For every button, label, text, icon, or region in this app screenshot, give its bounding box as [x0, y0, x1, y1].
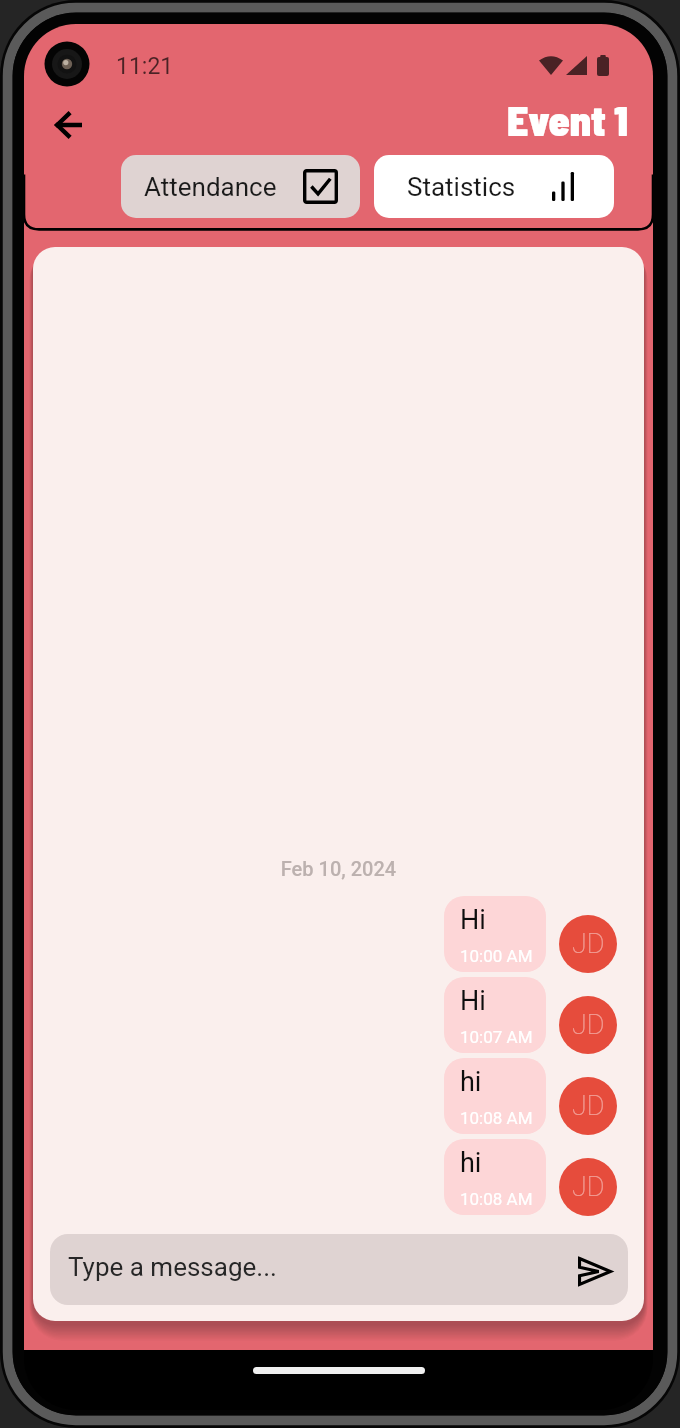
button[interactable]: JD	[559, 1077, 617, 1135]
staticText: Hi	[460, 904, 486, 936]
staticText: 10:00 AM	[460, 946, 533, 966]
button[interactable]: JD	[559, 1158, 617, 1216]
staticText: 10:08 AM	[460, 1108, 533, 1128]
staticText: Event 1	[507, 94, 628, 144]
staticText: JD	[572, 1009, 605, 1041]
button[interactable]: Back	[38, 96, 99, 153]
button[interactable]: Hi	[444, 977, 546, 1053]
button[interactable]: hi	[444, 1058, 546, 1134]
staticText: Feb 10, 2024	[33, 857, 644, 880]
staticText: hi	[460, 1147, 482, 1179]
staticText: Hi	[460, 985, 486, 1017]
button[interactable]: Send	[572, 1248, 618, 1294]
button[interactable]: Attendance	[121, 155, 360, 218]
staticText: hi	[460, 1066, 482, 1098]
staticText: 10:07 AM	[460, 1027, 533, 1047]
button[interactable]: JD	[559, 915, 617, 973]
staticText: Statistics	[407, 172, 516, 202]
button[interactable]: Statistics	[374, 155, 614, 218]
staticText: Type a message...	[68, 1252, 277, 1282]
staticText: 11:21	[116, 53, 174, 80]
button[interactable]: hi	[444, 1139, 546, 1215]
staticText: Attendance	[144, 172, 277, 202]
button[interactable]: Type a message...	[50, 1234, 628, 1305]
staticText: JD	[572, 1171, 605, 1203]
button[interactable]: JD	[559, 996, 617, 1054]
staticText: JD	[572, 1090, 605, 1122]
staticText: 10:08 AM	[460, 1189, 533, 1209]
button[interactable]: Hi	[444, 896, 546, 972]
staticText: JD	[572, 928, 605, 960]
